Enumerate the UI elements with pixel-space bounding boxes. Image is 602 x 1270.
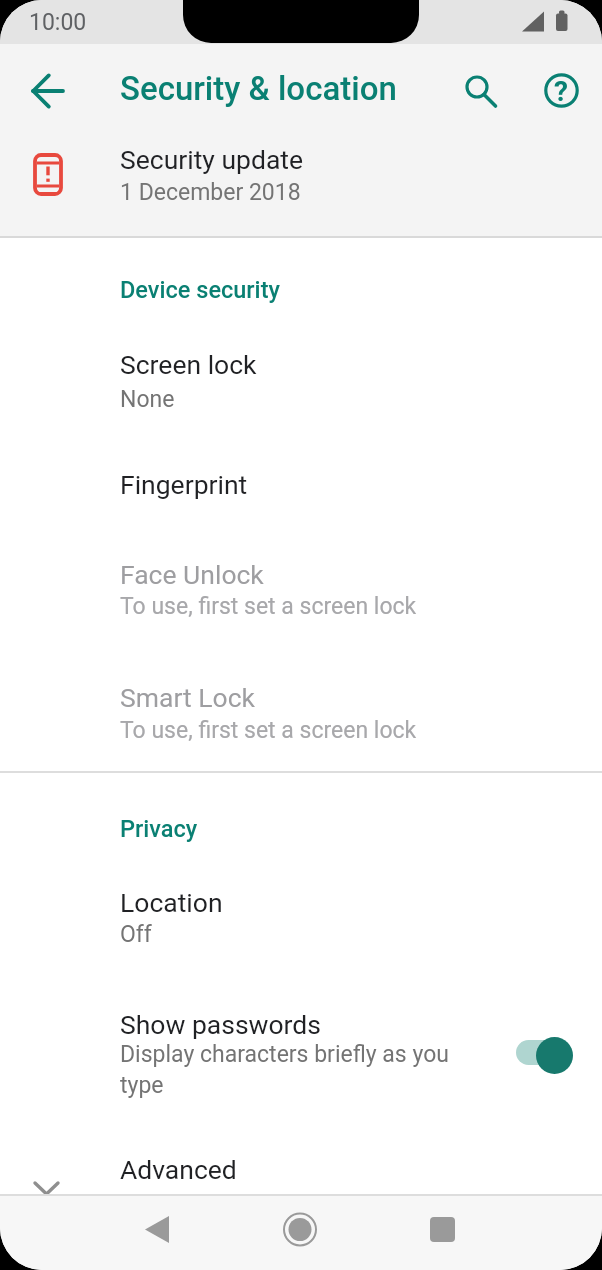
staticText: Off [120, 921, 152, 948]
button[interactable] [415, 1202, 471, 1258]
button[interactable]: Location [0, 865, 602, 970]
button[interactable]: Advanced [0, 1135, 602, 1196]
staticText: Location [120, 887, 223, 918]
staticText: Security & location [120, 69, 397, 108]
staticText: To use, first set a screen lock [120, 717, 417, 744]
staticText: Advanced [120, 1154, 237, 1185]
button[interactable]: Security update [0, 136, 602, 236]
staticText: Privacy [120, 815, 198, 843]
staticText: Fingerprint [120, 469, 248, 500]
staticText: 10:00 [29, 9, 87, 36]
button[interactable]: Smart Lock [0, 660, 602, 765]
staticText: Display characters briefly as you type [120, 1041, 480, 1098]
button[interactable] [536, 1037, 573, 1074]
staticText: To use, first set a screen lock [120, 593, 417, 620]
button[interactable] [130, 1202, 186, 1258]
button[interactable]: Fingerprint [0, 445, 602, 525]
button[interactable] [22, 66, 72, 116]
button[interactable] [452, 65, 502, 115]
staticText: Device security [120, 276, 280, 304]
button[interactable]: Screen lock [0, 330, 602, 430]
button[interactable] [272, 1202, 328, 1258]
staticText: Screen lock [120, 349, 257, 380]
staticText: 1 December 2018 [120, 179, 301, 206]
staticText: None [120, 386, 175, 413]
staticText: Smart Lock [120, 682, 255, 713]
button[interactable]: Face Unlock [0, 540, 602, 640]
staticText: ? [554, 75, 568, 108]
button[interactable]: Show passwords [0, 985, 602, 1115]
button[interactable]: ? [536, 65, 588, 117]
staticText: Show passwords [120, 1009, 321, 1040]
staticText: Security update [120, 144, 304, 175]
staticText: Face Unlock [120, 559, 264, 590]
